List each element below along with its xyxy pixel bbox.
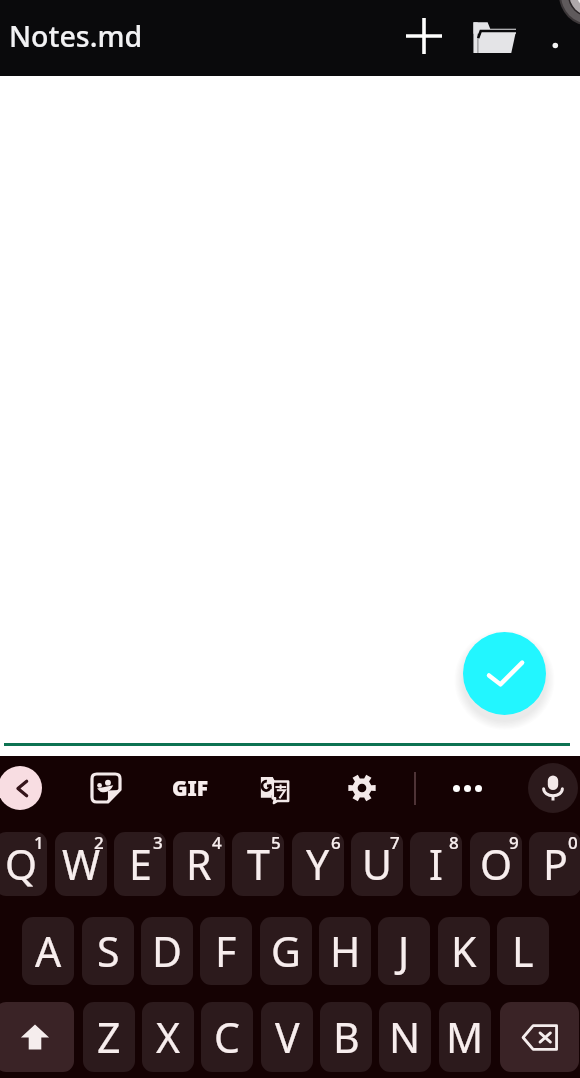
- staticText: L: [512, 923, 534, 979]
- staticText: 4: [212, 832, 222, 854]
- staticText: R: [186, 836, 212, 892]
- button[interactable]: A: [22, 917, 74, 985]
- button[interactable]: F: [200, 917, 252, 985]
- staticText: E: [129, 836, 152, 892]
- button[interactable]: Settings: [338, 764, 386, 812]
- button[interactable]: Translate: [250, 764, 298, 812]
- staticText: K: [451, 923, 477, 979]
- staticText: 0: [568, 832, 578, 854]
- staticText: Notes.md: [9, 17, 143, 56]
- button[interactable]: S: [82, 917, 134, 985]
- staticText: B: [333, 1009, 360, 1065]
- staticText: 3: [153, 832, 163, 854]
- button[interactable]: W: [55, 832, 107, 896]
- button[interactable]: B: [320, 1002, 372, 1072]
- staticText: 8: [449, 832, 459, 854]
- staticText: H: [330, 923, 361, 979]
- button[interactable]: Stickers: [82, 764, 130, 812]
- staticText: W: [62, 836, 101, 892]
- button[interactable]: O: [470, 832, 522, 896]
- staticText: G: [271, 923, 301, 979]
- button[interactable]: P: [529, 832, 580, 896]
- button[interactable]: D: [141, 917, 193, 985]
- staticText: I: [429, 836, 443, 892]
- staticText: V: [275, 1009, 300, 1065]
- staticText: U: [362, 836, 392, 892]
- staticText: M: [446, 1009, 484, 1065]
- staticText: C: [214, 1009, 240, 1065]
- button[interactable]: C: [201, 1002, 253, 1072]
- staticText: 7: [390, 832, 400, 854]
- staticText: 6: [331, 832, 341, 854]
- staticText: 1: [34, 832, 44, 854]
- button[interactable]: Y: [292, 832, 344, 896]
- staticText: Z: [97, 1009, 121, 1065]
- staticText: T: [247, 836, 270, 892]
- button[interactable]: Back: [0, 766, 42, 810]
- button[interactable]: Shift: [0, 1002, 74, 1072]
- staticText: 2: [94, 832, 104, 854]
- button[interactable]: Save note: [463, 632, 546, 715]
- button[interactable]: V: [261, 1002, 313, 1072]
- button[interactable]: T: [232, 832, 284, 896]
- button[interactable]: Open folder: [470, 13, 518, 61]
- button[interactable]: More options: [536, 0, 580, 76]
- button[interactable]: J: [378, 917, 430, 985]
- button[interactable]: H: [319, 917, 371, 985]
- button[interactable]: K: [438, 917, 490, 985]
- staticText: N: [389, 1009, 421, 1065]
- staticText: Y: [306, 836, 330, 892]
- staticText: A: [35, 923, 62, 979]
- button[interactable]: N: [379, 1002, 431, 1072]
- button[interactable]: M: [439, 1002, 491, 1072]
- button[interactable]: I: [410, 832, 462, 896]
- button[interactable]: X: [142, 1002, 194, 1072]
- staticText: D: [152, 923, 182, 979]
- staticText: GIF: [172, 774, 209, 803]
- button[interactable]: GIF: [166, 764, 214, 812]
- button[interactable]: U: [351, 832, 403, 896]
- button[interactable]: Voice input: [528, 763, 578, 813]
- staticText: F: [215, 923, 237, 979]
- staticText: 9: [509, 832, 519, 854]
- staticText: O: [480, 836, 513, 892]
- staticText: S: [97, 923, 120, 979]
- staticText: J: [398, 923, 410, 979]
- staticText: 5: [271, 832, 281, 854]
- button[interactable]: New note: [400, 12, 448, 60]
- button[interactable]: Q: [0, 832, 47, 896]
- button[interactable]: More keyboard options: [443, 764, 491, 812]
- button[interactable]: R: [173, 832, 225, 896]
- staticText: P: [543, 836, 568, 892]
- button[interactable]: L: [497, 917, 549, 985]
- button[interactable]: G: [260, 917, 312, 985]
- button[interactable]: E: [114, 832, 166, 896]
- staticText: X: [156, 1009, 181, 1065]
- button[interactable]: Backspace: [500, 1002, 579, 1072]
- staticText: Q: [5, 836, 38, 892]
- button[interactable]: Z: [83, 1002, 135, 1072]
